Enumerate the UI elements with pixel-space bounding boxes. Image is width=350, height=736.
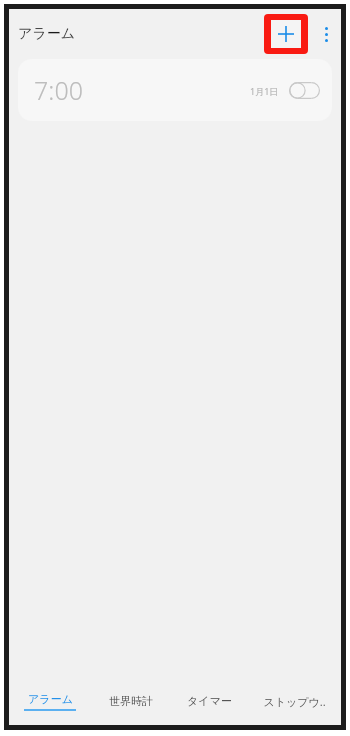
button[interactable]: アラーム <box>9 677 90 725</box>
button[interactable]: ストップウ.. <box>248 677 341 725</box>
button[interactable]: アラームを追加 <box>271 20 301 48</box>
button[interactable]: アラームのオン／オフ <box>289 82 320 99</box>
staticText: タイマー <box>187 694 232 708</box>
staticText: 1月1日 <box>250 85 279 97</box>
button[interactable]: タイマー <box>171 677 248 725</box>
staticText: アラーム <box>28 692 73 706</box>
staticText: アラーム <box>18 25 75 43</box>
staticText: 世界時計 <box>109 694 153 708</box>
staticText: 7:00 <box>34 73 83 107</box>
button[interactable]: 世界時計 <box>90 677 171 725</box>
button[interactable]: 7:00 <box>18 59 332 121</box>
button[interactable]: その他のオプション <box>315 23 337 45</box>
staticText: ストップウ.. <box>263 694 326 709</box>
